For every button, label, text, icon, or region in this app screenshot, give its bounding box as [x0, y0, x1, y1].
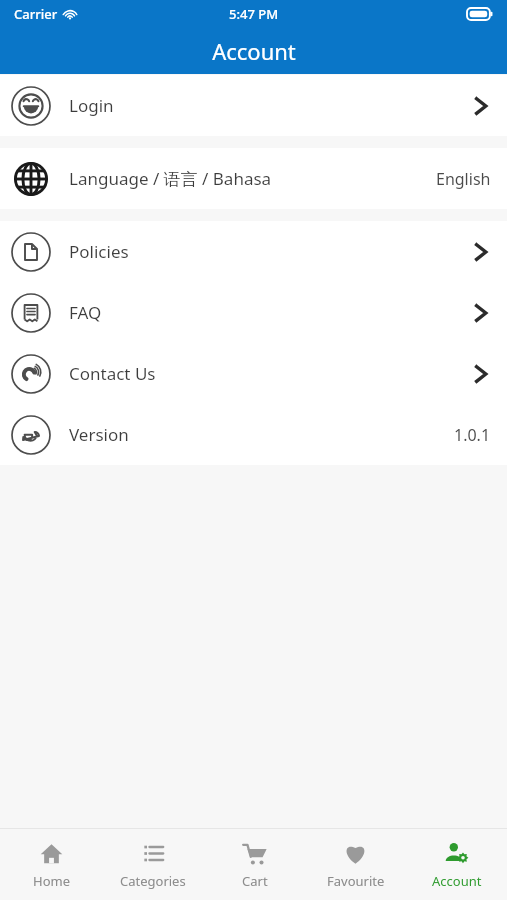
staticText: Account	[432, 872, 482, 890]
button[interactable]: Language / 语言 / Bahasa	[0, 148, 507, 209]
staticText: Favourite	[327, 872, 385, 890]
staticText: English	[436, 168, 491, 190]
staticText: Policies	[69, 240, 129, 263]
button[interactable]: Contact Us	[0, 343, 507, 404]
staticText: Account	[212, 36, 296, 66]
button[interactable]: Policies	[0, 221, 507, 282]
button[interactable]: Home	[0, 829, 102, 900]
staticText: Contact Us	[69, 362, 156, 385]
button[interactable]: Account	[406, 829, 507, 900]
staticText: Login	[69, 94, 114, 117]
button[interactable]: FAQ	[0, 282, 507, 343]
staticText: 5:47 PM	[229, 5, 279, 23]
staticText: Version	[69, 423, 129, 446]
staticText: Home	[33, 872, 70, 890]
button[interactable]: Cart	[204, 829, 305, 900]
staticText: Language / 语言 / Bahasa	[69, 167, 272, 190]
button[interactable]: Version	[0, 404, 507, 465]
staticText: Categories	[120, 872, 186, 890]
staticText: FAQ	[69, 301, 102, 324]
button[interactable]: Login	[0, 75, 507, 136]
staticText: 1.0.1	[454, 424, 491, 446]
staticText: Carrier	[14, 5, 58, 23]
staticText: Cart	[242, 872, 268, 890]
button[interactable]: Favourite	[305, 829, 406, 900]
button[interactable]: Categories	[102, 829, 204, 900]
